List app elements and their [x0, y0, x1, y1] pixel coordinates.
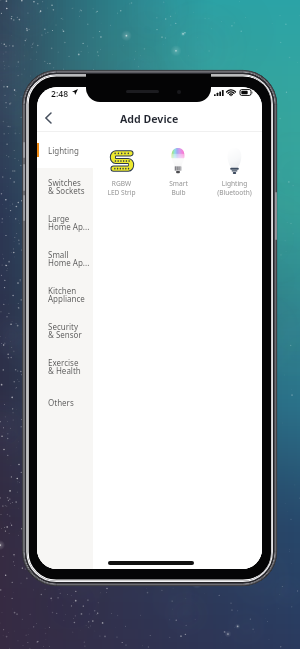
staticText: Smart Bulb — [169, 179, 188, 197]
staticText: Lighting — [48, 145, 79, 156]
staticText: Large Home Ap... — [48, 213, 90, 232]
staticText: RGBW LED Strip — [107, 179, 136, 197]
staticText: Small Home Ap... — [48, 249, 90, 268]
button[interactable]: RGBW LED Strip — [93, 132, 150, 197]
button[interactable]: Exercise & Health — [37, 348, 93, 384]
button[interactable]: Security & Sensor — [37, 312, 93, 348]
staticText: Others — [48, 397, 74, 408]
staticText: Exercise & Health — [48, 357, 81, 376]
button[interactable]: Smart Bulb — [150, 132, 206, 197]
button[interactable]: Lighting (Bluetooth) — [206, 132, 262, 197]
staticText: Security & Sensor — [48, 321, 82, 340]
button[interactable]: Others — [37, 384, 93, 420]
button[interactable]: Large Home Ap... — [37, 204, 93, 240]
button[interactable]: Kitchen Appliance — [37, 276, 93, 312]
staticText: Switches & Sockets — [48, 177, 85, 196]
button[interactable]: Small Home Ap... — [37, 240, 93, 276]
button[interactable]: Switches & Sockets — [37, 168, 93, 204]
button[interactable]: Back — [39, 106, 61, 132]
staticText: Kitchen Appliance — [48, 285, 85, 304]
button[interactable]: Lighting — [37, 132, 93, 168]
staticText: Lighting (Bluetooth) — [217, 179, 252, 197]
staticText: 2:48 — [51, 88, 69, 100]
staticText: Add Device — [120, 112, 179, 126]
